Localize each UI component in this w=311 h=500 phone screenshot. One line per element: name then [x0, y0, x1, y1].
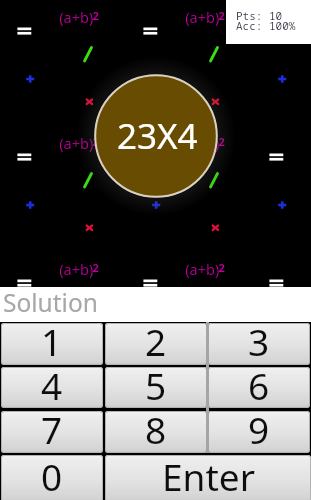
staticText: 3	[248, 323, 270, 365]
button[interactable]: Score	[226, 0, 311, 44]
staticText: 1	[41, 323, 63, 365]
staticText: 4	[41, 367, 63, 408]
button[interactable]: 0	[1, 455, 103, 500]
staticText: 8	[145, 411, 167, 453]
staticText: 23X4	[117, 112, 198, 160]
button[interactable]: 9	[208, 411, 310, 453]
button[interactable]: Solution	[0, 287, 311, 322]
button[interactable]: Enter	[105, 455, 311, 500]
button[interactable]: 1	[1, 323, 103, 365]
staticText: 6	[248, 367, 270, 408]
button[interactable]: 7	[1, 411, 103, 453]
staticText: 0	[41, 455, 63, 500]
staticText: 2	[145, 323, 167, 365]
staticText: 5	[145, 367, 167, 408]
staticText: Enter	[162, 455, 255, 500]
staticText: 9	[248, 411, 270, 453]
button[interactable]: 3	[208, 323, 310, 365]
button[interactable]: 6	[208, 367, 310, 408]
staticText: Solution	[3, 286, 98, 319]
button[interactable]: 5	[105, 367, 207, 408]
staticText: 7	[41, 411, 63, 453]
button[interactable]: 8	[105, 411, 207, 453]
button[interactable]: 2	[105, 323, 207, 365]
staticText: Pts: 10 Acc: 100%	[236, 8, 296, 33]
button[interactable]: 4	[1, 367, 103, 408]
